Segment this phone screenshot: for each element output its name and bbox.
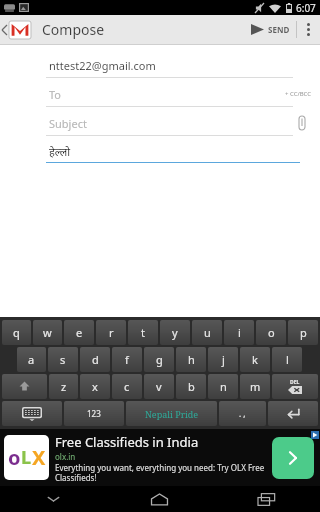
staticText: z [61, 379, 67, 394]
staticText: 6:07 [296, 1, 316, 15]
staticText: u [204, 325, 211, 340]
staticText: हेल्लो [49, 144, 71, 159]
staticText: o [8, 444, 21, 471]
staticText: l [286, 352, 289, 367]
button[interactable]: m [240, 374, 270, 399]
button[interactable]: Enter [268, 401, 318, 426]
button[interactable]: c [112, 374, 142, 399]
staticText: s [60, 352, 66, 367]
staticText: f [125, 352, 129, 367]
button[interactable]: z [49, 374, 78, 399]
button[interactable]: Open ad [272, 437, 314, 479]
button[interactable]: + CC/BCC [281, 90, 312, 98]
button[interactable]: k [240, 347, 270, 372]
button[interactable]: Attach file [292, 111, 312, 135]
button[interactable]: o [0, 429, 320, 486]
staticText: 123 [87, 408, 101, 419]
staticText: i [238, 325, 241, 340]
staticText: DEL [290, 379, 300, 386]
staticText: n [220, 379, 227, 394]
staticText: m [250, 379, 261, 394]
button[interactable]: h [176, 347, 206, 372]
button[interactable]: q [2, 320, 31, 345]
button[interactable]: More options [297, 15, 320, 44]
button[interactable]: Shift [2, 374, 47, 399]
staticText: Free Classifieds in India [55, 433, 199, 451]
button[interactable]: r [96, 320, 126, 345]
button[interactable]: Space [126, 401, 217, 426]
staticText: j [222, 352, 225, 367]
staticText: e [76, 325, 83, 340]
staticText: o [268, 325, 275, 340]
staticText: + CC/BCC [285, 90, 312, 98]
staticText: h [188, 352, 195, 367]
staticText: x [92, 379, 98, 394]
staticText: Subject [49, 116, 87, 131]
staticText: y [172, 325, 178, 340]
button[interactable]: SEND [245, 15, 296, 44]
button[interactable]: s [48, 347, 78, 372]
button[interactable]: p [288, 320, 318, 345]
button[interactable]: n [208, 374, 238, 399]
staticText: p [300, 325, 307, 340]
button[interactable]: nttest22@gmail.com [46, 53, 312, 77]
button[interactable]: y [160, 320, 190, 345]
staticText: X [32, 444, 46, 471]
staticText: SEND [268, 24, 290, 35]
button[interactable]: हेल्लो [46, 140, 312, 162]
button[interactable]: Navigate up [0, 15, 33, 44]
button[interactable]: g [144, 347, 174, 372]
staticText: q [13, 325, 20, 340]
button[interactable]: t [128, 320, 158, 345]
staticText: Everything you want, everything you need… [55, 462, 268, 482]
staticText: L [21, 445, 32, 470]
staticText: g [156, 352, 163, 367]
staticText: Nepali Pride [145, 408, 199, 420]
button[interactable]: j [208, 347, 238, 372]
button[interactable]: Back [0, 486, 106, 512]
staticText: To [49, 87, 62, 102]
staticText: w [43, 325, 52, 340]
button[interactable]: x [80, 374, 110, 399]
staticText: nttest22@gmail.com [49, 58, 156, 73]
button[interactable]: Change keyboard [2, 401, 62, 426]
button[interactable]: To [46, 82, 281, 106]
staticText: v [156, 379, 162, 394]
staticText: b [188, 379, 195, 394]
staticText: t [141, 325, 145, 340]
button[interactable]: . , [219, 401, 266, 426]
staticText: d [92, 352, 99, 367]
staticText: a [28, 352, 35, 367]
button[interactable]: Subject [46, 111, 292, 135]
button[interactable]: f [112, 347, 142, 372]
button[interactable]: a [17, 347, 46, 372]
button[interactable]: i [224, 320, 254, 345]
button[interactable]: d [80, 347, 110, 372]
button[interactable]: Ad choices [311, 431, 319, 439]
button[interactable]: o [256, 320, 286, 345]
staticText: olx.in [55, 451, 76, 462]
button[interactable]: Home [106, 486, 213, 512]
staticText: Compose [42, 20, 105, 39]
button[interactable]: 123 [64, 401, 124, 426]
staticText: c [124, 379, 130, 394]
button[interactable]: Delete [272, 374, 318, 399]
button[interactable]: w [33, 320, 62, 345]
staticText: r [109, 325, 114, 340]
button[interactable]: e [64, 320, 94, 345]
button[interactable]: v [144, 374, 174, 399]
staticText: . , [239, 408, 246, 419]
button[interactable]: Recent apps [213, 486, 320, 512]
button[interactable]: u [192, 320, 222, 345]
button[interactable]: b [176, 374, 206, 399]
button[interactable]: l [272, 347, 302, 372]
staticText: k [252, 352, 258, 367]
